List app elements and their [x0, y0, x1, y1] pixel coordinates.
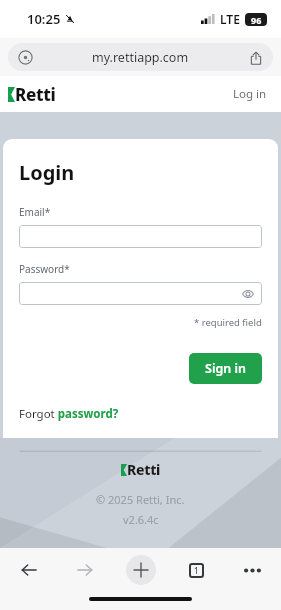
button[interactable]: Page settings — [17, 49, 34, 66]
staticText: 96 — [251, 14, 262, 26]
staticText: Forgot password? — [19, 406, 119, 422]
staticText: Retti — [127, 460, 161, 479]
button[interactable]: Forward — [70, 555, 100, 585]
button[interactable]: Share — [247, 49, 264, 66]
button[interactable]: Show password — [19, 282, 262, 305]
button[interactable]: Sign in — [189, 353, 262, 384]
button[interactable]: Back — [14, 555, 44, 585]
staticText: Login — [19, 159, 75, 186]
staticText: Log in — [233, 86, 267, 102]
staticText: © 2025 Retti, Inc. — [96, 492, 185, 507]
button[interactable]: New tab — [126, 555, 156, 585]
button[interactable]: More options — [237, 555, 267, 585]
staticText: 10:25 — [27, 10, 61, 28]
button[interactable] — [19, 225, 262, 248]
staticText: Retti — [15, 83, 56, 106]
staticText: my.rettiapp.com — [92, 49, 189, 66]
button[interactable]: Tabs — [181, 555, 211, 585]
staticText: Sign in — [205, 360, 246, 377]
button[interactable]: Retti — [8, 83, 56, 106]
staticText: Email* — [19, 205, 51, 219]
button[interactable]: Log in — [233, 86, 267, 102]
staticText: Password* — [19, 262, 70, 276]
button[interactable]: Page settings — [8, 43, 273, 71]
staticText: 1 — [194, 565, 199, 576]
staticText: v2.6.4c — [123, 512, 159, 527]
staticText: LTE — [220, 11, 240, 27]
button[interactable]: Forgot password? — [19, 406, 119, 422]
button[interactable]: Show password — [241, 287, 255, 301]
staticText: * required field — [194, 316, 262, 329]
